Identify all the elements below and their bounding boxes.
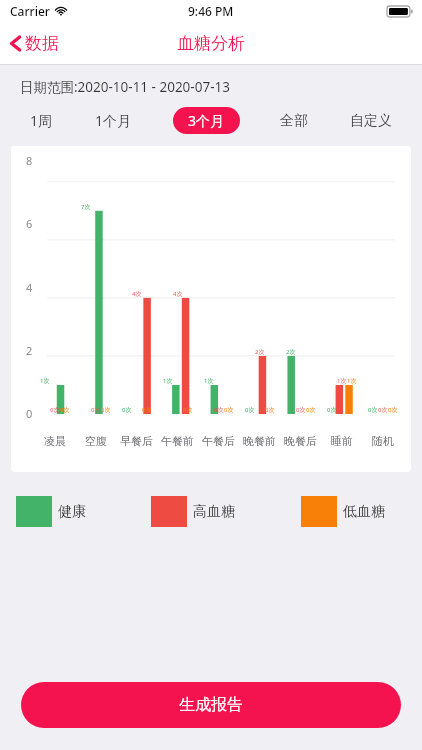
staticText: 数据 (25, 33, 59, 54)
staticText: 0次 (296, 406, 306, 414)
staticText: 1次 (163, 377, 173, 385)
staticText: 0 (26, 406, 33, 421)
staticText: 凌晨 (44, 434, 66, 448)
staticText: 1周 (30, 111, 53, 130)
staticText: 午餐前 (161, 434, 194, 448)
staticText: 0次 (388, 406, 398, 414)
staticText: 0次 (378, 406, 388, 414)
staticText: 3个月 (188, 111, 225, 130)
staticText: 9:46 PM (188, 3, 234, 19)
staticText: 7次 (81, 203, 91, 211)
staticText: 1次 (204, 377, 214, 385)
staticText: 0次 (91, 406, 101, 414)
button[interactable]: 高血糖 (151, 496, 235, 527)
staticText: 生成报告 (179, 695, 243, 715)
button[interactable]: 1个月 (93, 107, 134, 134)
staticText: 0次 (245, 406, 255, 414)
button[interactable]: 低血糖 (301, 496, 385, 527)
staticText: 睡前 (331, 434, 353, 448)
staticText: 0次 (224, 406, 234, 414)
staticText: 4 (26, 280, 33, 295)
staticText: 0次 (101, 406, 111, 414)
staticText: 2次 (255, 348, 265, 356)
staticText: 0次 (265, 406, 275, 414)
staticText: 血糖分析 (177, 33, 245, 54)
staticText: 晚餐前 (243, 434, 276, 448)
staticText: 空腹 (85, 434, 107, 448)
staticText: 健康 (58, 503, 86, 521)
staticText: 2次 (286, 348, 296, 356)
staticText: 0次 (60, 406, 70, 414)
staticText: 0次 (214, 406, 224, 414)
staticText: 晚餐后 (284, 434, 317, 448)
staticText: 日期范围:2020-10-11 - 2020-07-13 (20, 78, 230, 96)
staticText: 0次 (142, 406, 152, 414)
staticText: 1个月 (95, 111, 132, 130)
staticText: 高血糖 (193, 503, 235, 521)
staticText: 0次 (122, 406, 132, 414)
staticText: 低血糖 (343, 503, 385, 521)
button[interactable]: 健康 (16, 496, 86, 527)
button[interactable]: 自定义 (348, 108, 394, 134)
button[interactable]: 全部 (278, 108, 310, 134)
staticText: 午餐后 (202, 434, 235, 448)
button[interactable]: 生成报告 (21, 682, 401, 728)
staticText: 0次 (50, 406, 60, 414)
button[interactable]: 1周 (28, 107, 55, 134)
staticText: 自定义 (350, 112, 392, 130)
staticText: 2 (26, 343, 33, 358)
staticText: 1次 (347, 377, 357, 385)
button[interactable]: 3个月 (173, 107, 240, 134)
staticText: 0次 (327, 406, 337, 414)
staticText: 6 (26, 216, 33, 231)
staticText: 8 (26, 153, 33, 168)
staticText: 1次 (40, 377, 50, 385)
staticText: Carrier (10, 3, 50, 19)
staticText: 随机 (372, 434, 394, 448)
staticText: 1次 (337, 377, 347, 385)
staticText: 早餐后 (120, 434, 153, 448)
button[interactable]: Back to 数据 (0, 27, 73, 60)
staticText: 4次 (132, 290, 142, 298)
staticText: 4次 (173, 290, 183, 298)
staticText: 0次 (183, 406, 193, 414)
staticText: 全部 (280, 112, 308, 130)
staticText: 0次 (368, 406, 378, 414)
staticText: 0次 (306, 406, 316, 414)
